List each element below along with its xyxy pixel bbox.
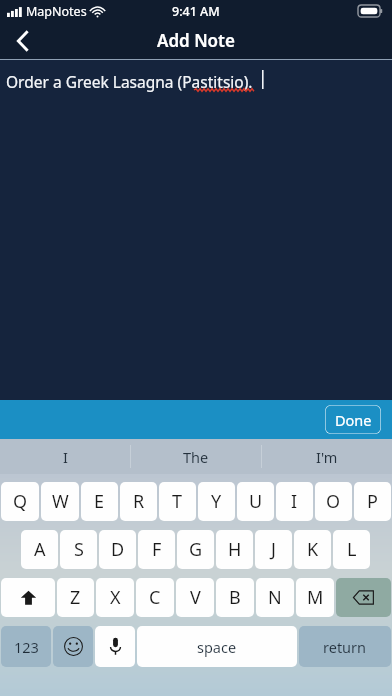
staticText: Z: [70, 585, 81, 610]
staticText: X: [110, 585, 121, 610]
button[interactable]: Emoji: [53, 626, 93, 667]
button[interactable]: S: [60, 530, 97, 569]
staticText: F: [152, 537, 162, 562]
button[interactable]: K: [294, 530, 331, 569]
button[interactable]: Y: [198, 482, 235, 521]
button[interactable]: The: [131, 439, 261, 474]
staticText: Q: [13, 489, 28, 514]
button[interactable]: Q: [1, 482, 39, 521]
button[interactable]: A: [21, 530, 58, 569]
button[interactable]: 123: [1, 626, 51, 667]
button[interactable]: L: [333, 530, 370, 569]
staticText: I: [63, 447, 68, 467]
staticText: A: [34, 537, 46, 562]
button[interactable]: V: [176, 578, 214, 617]
staticText: I'm: [316, 447, 338, 467]
staticText: W: [52, 489, 69, 514]
staticText: O: [326, 489, 341, 514]
button[interactable]: E: [81, 482, 118, 521]
button[interactable]: T: [159, 482, 196, 521]
staticText: U: [249, 489, 263, 514]
staticText: Order a Greek Lasagna (Pastitsio).: [6, 71, 253, 92]
button[interactable]: O: [315, 482, 352, 521]
staticText: K: [307, 537, 319, 562]
button[interactable]: M: [296, 578, 334, 617]
staticText: Add Note: [157, 29, 235, 52]
button[interactable]: H: [216, 530, 253, 569]
staticText: T: [172, 489, 183, 514]
button[interactable]: return: [299, 626, 391, 667]
staticText: Done: [335, 410, 372, 430]
staticText: V: [190, 585, 201, 610]
button[interactable]: W: [41, 482, 79, 521]
button[interactable]: N: [256, 578, 294, 617]
staticText: M: [307, 585, 324, 610]
button[interactable]: Z: [57, 578, 94, 617]
button[interactable]: I'm: [262, 439, 392, 474]
staticText: N: [268, 585, 282, 610]
button[interactable]: R: [120, 482, 157, 521]
staticText: H: [228, 537, 242, 562]
staticText: 9:41 AM: [172, 3, 220, 20]
staticText: J: [271, 537, 276, 562]
staticText: space: [197, 637, 237, 657]
button[interactable]: D: [99, 530, 136, 569]
button[interactable]: I: [276, 482, 313, 521]
staticText: C: [149, 585, 161, 610]
staticText: L: [347, 537, 357, 562]
button[interactable]: J: [255, 530, 292, 569]
button[interactable]: Done: [325, 405, 381, 434]
staticText: MapNotes: [26, 3, 87, 20]
staticText: B: [229, 585, 241, 610]
button[interactable]: B: [216, 578, 254, 617]
button[interactable]: G: [177, 530, 214, 569]
staticText: D: [111, 537, 125, 562]
button[interactable]: I: [0, 439, 130, 474]
staticText: P: [367, 489, 378, 514]
staticText: The: [183, 447, 209, 467]
button[interactable]: X: [96, 578, 134, 617]
staticText: I: [291, 489, 298, 514]
staticText: Y: [211, 489, 222, 514]
button[interactable]: space: [137, 626, 297, 667]
button[interactable]: Shift: [1, 578, 55, 617]
staticText: R: [133, 489, 145, 514]
staticText: 123: [14, 637, 39, 657]
button[interactable]: Dictate: [95, 626, 135, 667]
staticText: E: [94, 489, 105, 514]
button[interactable]: C: [136, 578, 174, 617]
staticText: S: [74, 537, 84, 562]
staticText: G: [189, 537, 203, 562]
staticText: return: [323, 637, 367, 657]
button[interactable]: U: [237, 482, 274, 521]
button[interactable]: P: [354, 482, 391, 521]
button[interactable]: F: [138, 530, 175, 569]
button[interactable]: Back: [0, 22, 46, 59]
button[interactable]: Backspace: [336, 578, 391, 617]
